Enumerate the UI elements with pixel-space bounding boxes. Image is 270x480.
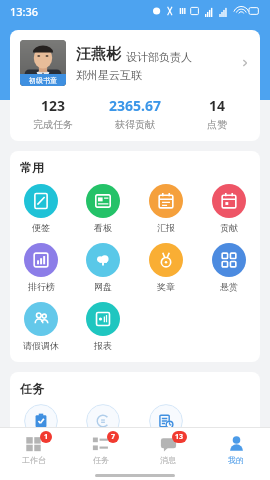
button[interactable]: 奖章 (149, 240, 183, 295)
button[interactable]: 请假调休 (23, 299, 59, 354)
button[interactable]: 123 (14, 96, 92, 131)
staticText: 2365.67 (96, 96, 174, 115)
staticText: 任务 (20, 381, 44, 396)
button[interactable]: 14 (178, 96, 256, 131)
staticText: 123 (14, 96, 92, 115)
button[interactable]: 我的 (202, 428, 270, 470)
staticText: 网盘 (94, 281, 112, 292)
staticText: 看板 (94, 222, 112, 233)
button[interactable]: 2365.67 (96, 96, 174, 131)
button[interactable]: 网盘 (86, 240, 120, 295)
staticText: 13:36 (10, 4, 39, 19)
staticText: 7 (111, 432, 116, 442)
button[interactable]: 初级书童 (10, 30, 260, 94)
button[interactable]: 1 (0, 428, 67, 470)
button[interactable]: 任务 0 (24, 404, 58, 438)
staticText: 点赞 (178, 118, 256, 131)
staticText: 初级书童 (29, 76, 57, 85)
button[interactable]: 报表 (86, 299, 120, 354)
button[interactable]: 便签 (24, 181, 58, 236)
button[interactable]: 排行榜 (24, 240, 58, 295)
staticText: 常用 (20, 160, 44, 175)
staticText: 14 (178, 96, 256, 115)
button[interactable]: 贡献 (212, 181, 246, 236)
button[interactable]: 看板 (86, 181, 120, 236)
staticText: 工作台 (22, 455, 46, 465)
button[interactable]: 任务 1 (86, 404, 120, 438)
button[interactable]: 汇报 (149, 181, 183, 236)
staticText: 汇报 (157, 222, 175, 233)
button[interactable]: 任务 2 (149, 404, 183, 438)
staticText: 完成任务 (14, 118, 92, 131)
staticText: 13 (175, 432, 184, 442)
staticText: 汪燕彬 (76, 45, 121, 64)
staticText: 郑州星云互联 (76, 68, 142, 82)
staticText: 便签 (32, 222, 50, 233)
staticText: 悬赏 (220, 281, 238, 292)
staticText: 消息 (160, 455, 176, 465)
staticText: 任务 (93, 455, 109, 465)
button[interactable]: 13 (134, 428, 202, 470)
staticText: 排行榜 (28, 281, 55, 292)
staticText: 设计部负责人 (126, 50, 192, 64)
staticText: 我的 (228, 455, 244, 465)
staticText: 请假调休 (23, 340, 59, 351)
button[interactable]: 悬赏 (212, 240, 246, 295)
button[interactable]: 7 (67, 428, 134, 470)
staticText: 获得贡献 (96, 118, 174, 131)
staticText: 奖章 (157, 281, 175, 292)
staticText: 贡献 (220, 222, 238, 233)
staticText: 报表 (94, 340, 112, 351)
staticText: 1 (44, 432, 49, 442)
